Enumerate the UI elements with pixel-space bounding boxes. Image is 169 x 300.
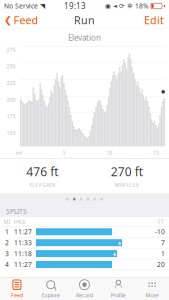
- staticText: 11:27: [14, 260, 32, 269]
- staticText: ELEV GAIN: [29, 181, 55, 188]
- staticText: 4: [5, 260, 9, 269]
- staticText: Explore: [42, 292, 60, 299]
- button[interactable]: Edit: [139, 10, 169, 30]
- staticText: ▲: [113, 251, 116, 256]
- staticText: 7: [161, 238, 165, 247]
- staticText: Feed: [13, 13, 38, 27]
- staticText: ✲: [127, 2, 133, 10]
- staticText: 476 ft: [26, 164, 58, 179]
- staticText: Edit: [144, 13, 164, 27]
- staticText: -10: [155, 227, 165, 236]
- staticText: MAX ELEV: [115, 181, 139, 188]
- staticText: Elevation: [68, 32, 101, 43]
- staticText: Feed: [11, 292, 23, 299]
- staticText: MI: [3, 218, 10, 225]
- staticText: 2: [5, 238, 9, 247]
- staticText: 1: [5, 227, 9, 236]
- staticText: Record: [76, 292, 93, 299]
- button[interactable]: Feed: [0, 277, 34, 300]
- staticText: 15: [153, 149, 159, 156]
- staticText: 20: [157, 260, 165, 269]
- staticText: ◉: [105, 2, 111, 10]
- staticText: Profile: [111, 292, 126, 299]
- staticText: ❮: [4, 15, 12, 25]
- staticText: 250: [6, 63, 15, 70]
- staticText: 200: [6, 96, 15, 103]
- staticText: 10: [106, 149, 112, 156]
- staticText: ▲: [118, 240, 121, 245]
- staticText: 275: [6, 46, 15, 53]
- button[interactable]: ◠: [101, 277, 135, 300]
- staticText: 3: [5, 249, 9, 258]
- staticText: ⟳: [119, 2, 125, 10]
- staticText: 11:33: [14, 238, 32, 247]
- staticText: 11:27: [14, 227, 32, 236]
- staticText: 18%: [135, 2, 149, 10]
- staticText: 175: [6, 113, 15, 120]
- button[interactable]: ❮: [0, 10, 42, 30]
- staticText: ◠: [114, 282, 122, 293]
- staticText: ◄: [113, 3, 117, 9]
- staticText: 225: [6, 79, 15, 86]
- staticText: 270 ft: [111, 164, 143, 179]
- staticText: 19:13: [64, 1, 86, 11]
- button[interactable]: Explore: [34, 277, 68, 300]
- staticText: ◥: [40, 2, 45, 10]
- staticText: Run: [74, 13, 95, 27]
- staticText: FT: [158, 218, 164, 225]
- button[interactable]: Record: [68, 277, 101, 300]
- staticText: SPLITS: [6, 207, 27, 216]
- button[interactable]: More: [135, 277, 169, 300]
- staticText: 11:18: [14, 249, 32, 258]
- staticText: 5: [63, 149, 66, 156]
- staticText: More: [146, 292, 159, 299]
- staticText: PACE: [14, 218, 26, 225]
- staticText: 1: [161, 249, 165, 258]
- staticText: No Service: [4, 2, 38, 10]
- staticText: 150: [6, 129, 15, 136]
- staticText: mi: [16, 149, 22, 156]
